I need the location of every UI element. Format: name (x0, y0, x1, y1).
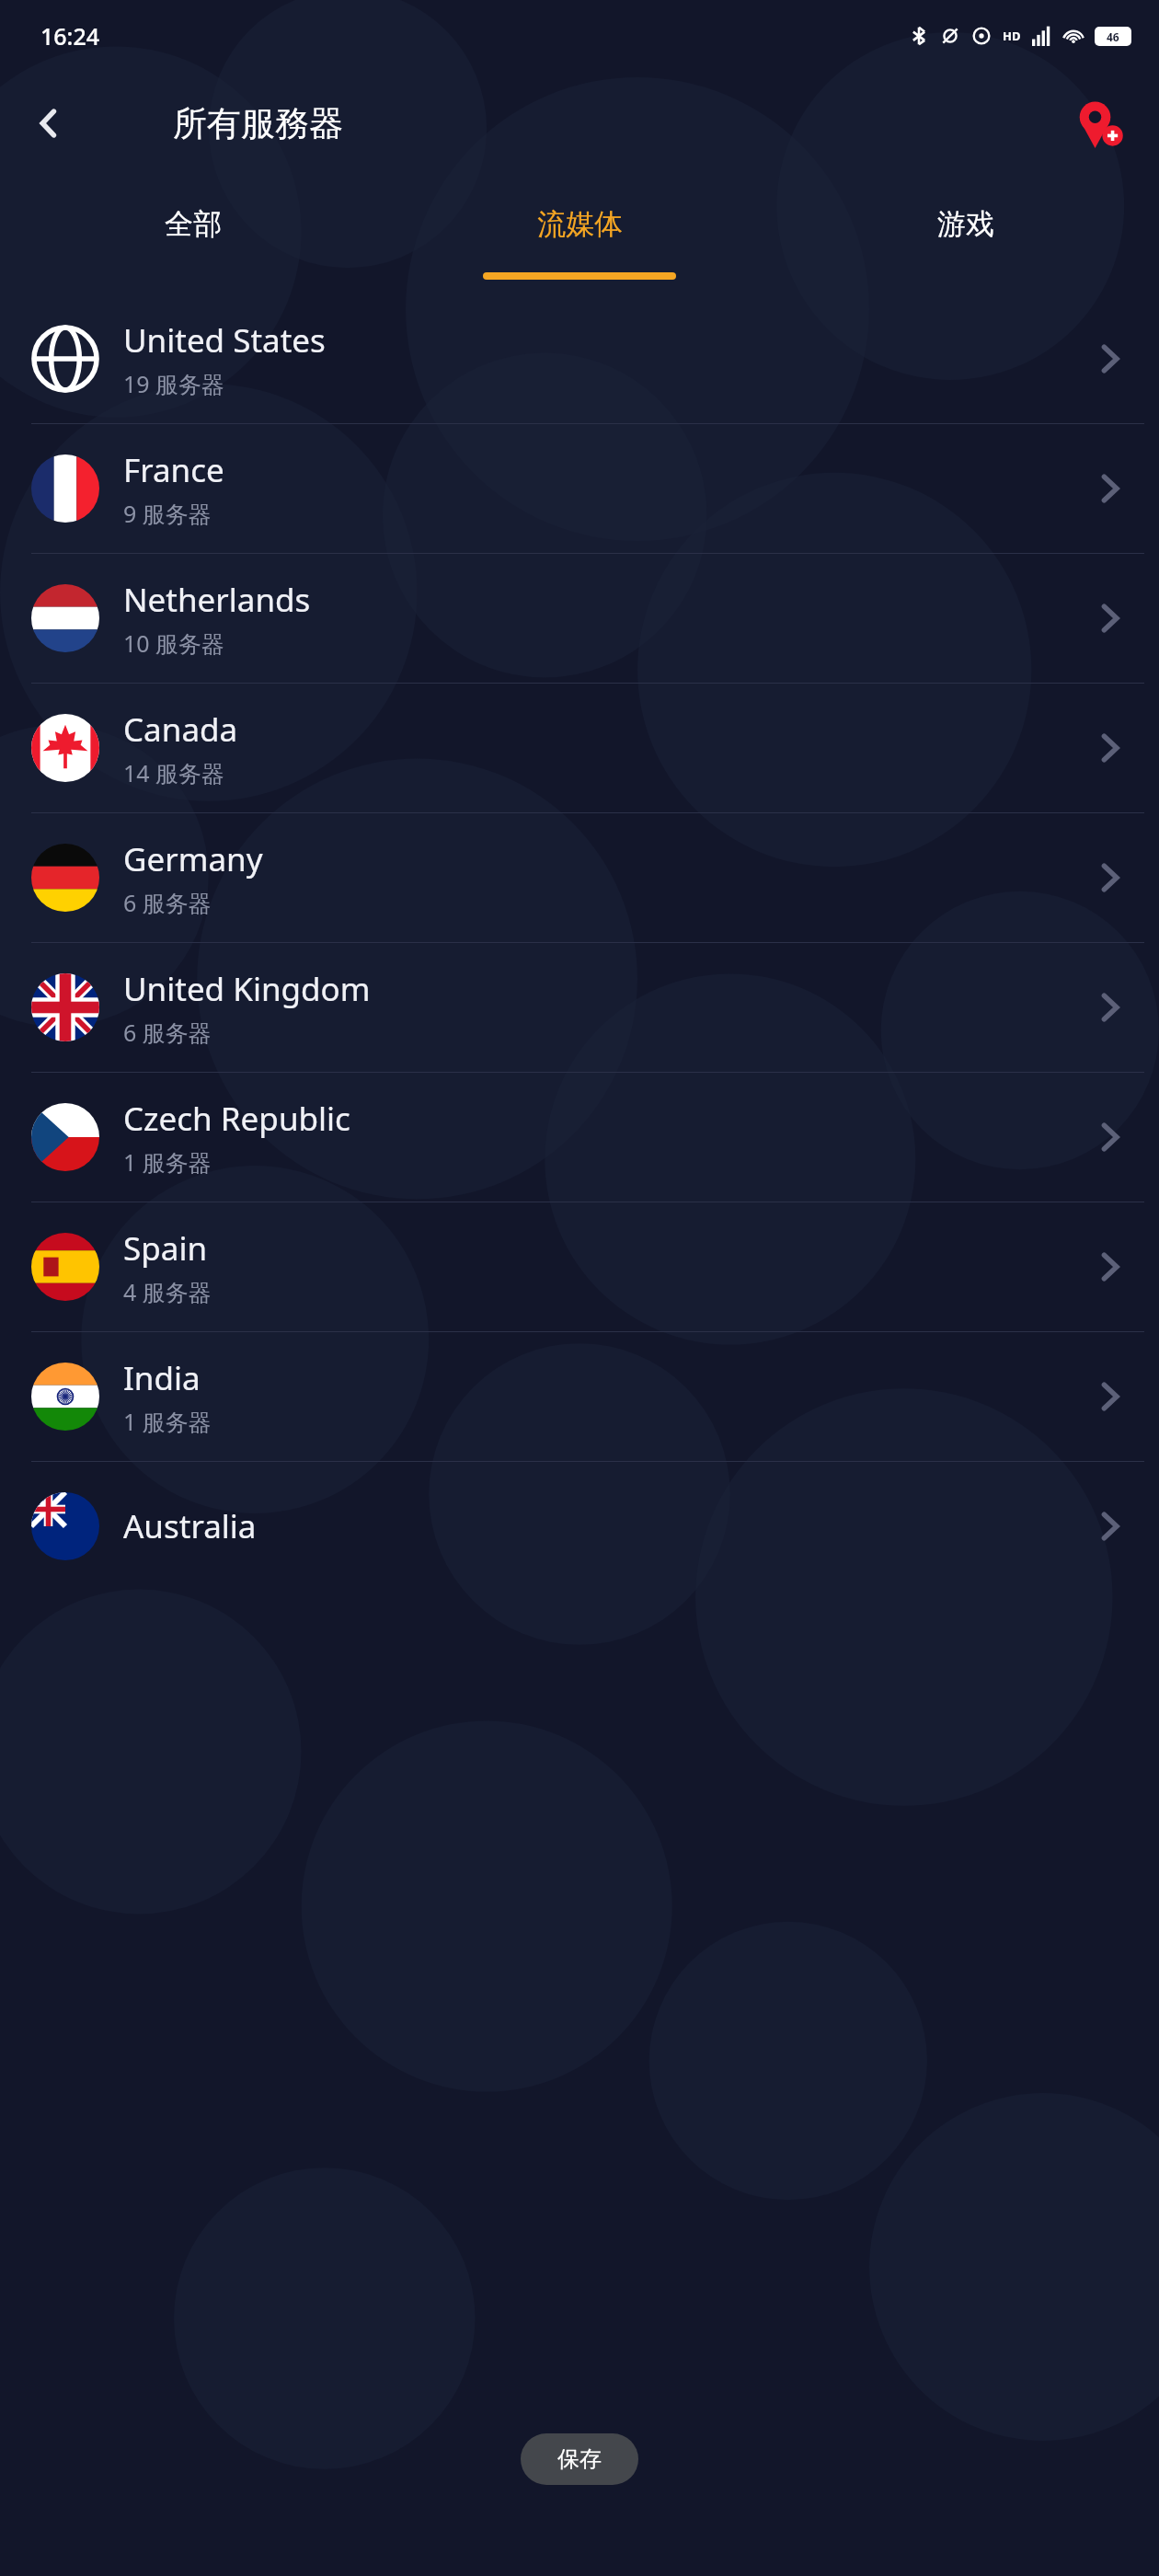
staticText: HD (1003, 28, 1021, 44)
button[interactable]: Netherlands (0, 554, 1159, 683)
staticText: Australia (123, 1504, 257, 1548)
other: Open Australia (1091, 1508, 1128, 1545)
staticText: 1 服务器 (123, 1146, 212, 1178)
staticText: 全部 (165, 206, 222, 242)
staticText: Czech Republic (123, 1097, 350, 1141)
button[interactable]: United States (0, 294, 1159, 423)
staticText: France (123, 448, 224, 492)
other: Open Germany (1091, 859, 1128, 896)
button[interactable]: Back (20, 95, 77, 152)
staticText: 6 服务器 (123, 887, 212, 918)
button[interactable]: Canada (0, 684, 1159, 812)
staticText: 46 (1107, 29, 1119, 44)
staticText: 6 服务器 (123, 1017, 212, 1048)
staticText: Canada (123, 707, 238, 752)
other: Open India (1091, 1378, 1128, 1415)
other: Open Netherlands (1091, 600, 1128, 637)
button[interactable]: Add location (1065, 89, 1133, 157)
staticText: 16:24 (40, 20, 100, 52)
staticText: 游戏 (937, 206, 994, 242)
other: Open United Kingdom (1091, 989, 1128, 1026)
button[interactable]: 保存 (521, 2433, 638, 2485)
other: Open Czech Republic (1091, 1119, 1128, 1156)
staticText: United Kingdom (123, 967, 371, 1011)
button[interactable]: India (0, 1332, 1159, 1461)
button[interactable]: 流媒体 (386, 175, 773, 272)
staticText: 19 服务器 (123, 368, 225, 399)
other: Open France (1091, 470, 1128, 507)
staticText: 所有服務器 (173, 102, 343, 145)
other: Open Canada (1091, 730, 1128, 766)
other: Open Spain (1091, 1248, 1128, 1285)
staticText: 流媒体 (537, 206, 623, 242)
staticText: Germany (123, 837, 263, 881)
staticText: 14 服务器 (123, 757, 225, 788)
staticText: India (123, 1356, 201, 1400)
button[interactable]: Germany (0, 813, 1159, 942)
staticText: 保存 (557, 2445, 602, 2473)
button[interactable]: Australia (0, 1462, 1159, 1591)
staticText: 4 服务器 (123, 1276, 212, 1307)
button[interactable]: Czech Republic (0, 1073, 1159, 1202)
staticText: 1 服务器 (123, 1406, 212, 1437)
staticText: Netherlands (123, 578, 311, 622)
button[interactable]: Spain (0, 1202, 1159, 1331)
button[interactable]: 全部 (0, 175, 386, 272)
staticText: 10 服务器 (123, 627, 225, 659)
staticText: Spain (123, 1226, 208, 1271)
button[interactable]: United Kingdom (0, 943, 1159, 1072)
button[interactable]: 游戏 (773, 175, 1159, 272)
other: Open United States (1091, 340, 1128, 377)
staticText: 9 服务器 (123, 498, 212, 529)
button[interactable]: France (0, 424, 1159, 553)
staticText: United States (123, 318, 326, 362)
